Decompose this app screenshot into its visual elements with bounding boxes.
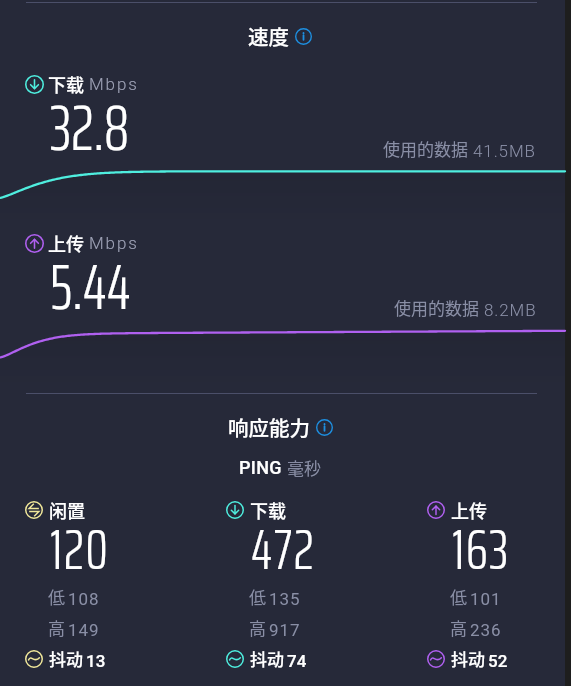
staticText: 使用的数据 <box>394 295 479 320</box>
staticText: 抖动 <box>451 646 485 671</box>
staticText: 32.8 <box>50 78 130 177</box>
staticText: 抖动 <box>250 646 284 671</box>
staticText: 低 <box>249 584 266 609</box>
staticText: 毫秒 <box>287 455 321 480</box>
staticText: 高 <box>450 615 467 640</box>
staticText: 下载 <box>250 497 286 523</box>
staticText: 52 <box>488 651 508 671</box>
staticText: 高 <box>48 615 65 640</box>
button[interactable]: 闲置 <box>25 497 210 677</box>
staticText: Mbps <box>89 74 139 94</box>
button[interactable]: 响应能力 说明 <box>316 419 333 436</box>
staticText: 上传 <box>48 230 84 256</box>
staticText: 使用的数据 <box>383 136 468 161</box>
staticText: 120 <box>50 505 110 593</box>
staticText: Mbps <box>89 233 139 253</box>
staticText: 472 <box>251 505 316 593</box>
button[interactable]: 速度 说明 <box>295 28 312 45</box>
staticText: 101 <box>470 589 502 609</box>
button[interactable]: 上传 <box>427 497 571 677</box>
staticText: 135 <box>269 589 301 609</box>
staticText: 41.5MB <box>473 141 536 161</box>
staticText: 163 <box>452 505 510 593</box>
staticText: PING <box>239 457 282 478</box>
staticText: 236 <box>470 620 502 640</box>
staticText: 低 <box>450 584 467 609</box>
staticText: 闲置 <box>49 497 85 523</box>
staticText: 下载 <box>48 71 84 97</box>
staticText: 响应能力 <box>228 412 310 442</box>
staticText: 上传 <box>451 497 487 523</box>
staticText: 149 <box>68 620 100 640</box>
staticText: 抖动 <box>49 646 83 671</box>
staticText: 13 <box>86 651 106 671</box>
staticText: 高 <box>249 615 266 640</box>
staticText: 速度 <box>248 21 289 51</box>
staticText: 5.44 <box>50 237 131 336</box>
staticText: 917 <box>269 620 301 640</box>
staticText: 108 <box>68 589 100 609</box>
staticText: 8.2MB <box>484 300 537 320</box>
staticText: 低 <box>48 584 65 609</box>
staticText: 74 <box>287 651 307 671</box>
button[interactable]: 下载 <box>226 497 411 677</box>
